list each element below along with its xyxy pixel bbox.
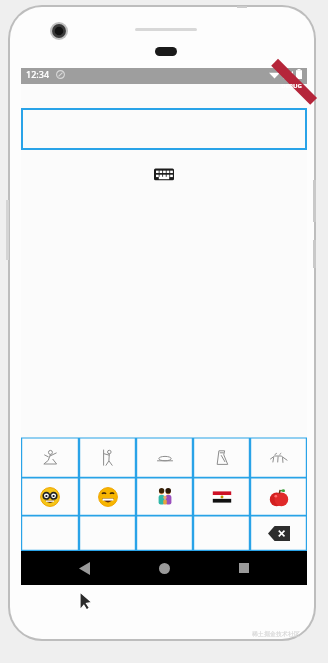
button[interactable]: Backspace [268,526,290,541]
staticText: 稀土掘金技术社区 [252,630,300,638]
staticText: 12:34 [26,68,50,80]
button[interactable] [193,516,250,551]
button[interactable] [21,478,79,516]
button[interactable] [250,438,307,478]
button[interactable]: Recent apps [227,551,261,585]
staticText: DEBUG [281,82,302,90]
button[interactable] [250,478,307,516]
button[interactable] [193,478,250,516]
button[interactable] [136,438,193,478]
button[interactable]: Back [67,551,101,585]
button[interactable]: Backspace [250,516,307,551]
button[interactable] [136,516,193,551]
button[interactable] [21,516,79,551]
button[interactable] [79,516,136,551]
button[interactable] [21,108,307,150]
button[interactable] [193,438,250,478]
button[interactable] [79,438,136,478]
button[interactable] [136,478,193,516]
button[interactable] [21,438,79,478]
button[interactable]: Home [147,551,181,585]
button[interactable]: Show keyboard [154,167,174,181]
button[interactable] [79,478,136,516]
